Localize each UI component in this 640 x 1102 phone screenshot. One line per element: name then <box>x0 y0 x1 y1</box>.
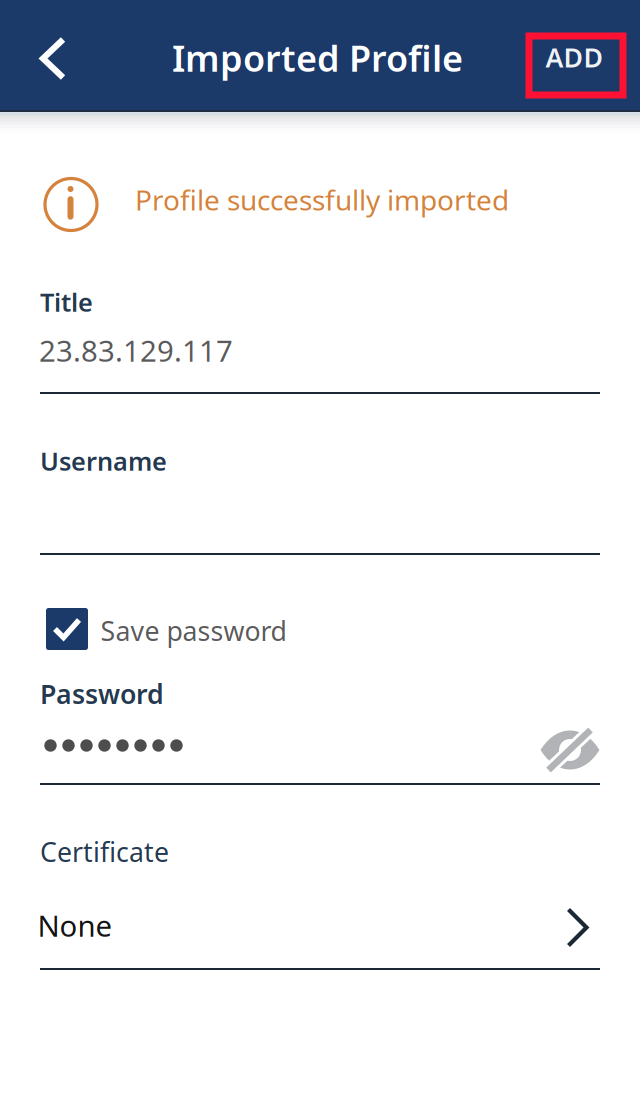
button[interactable]: Back <box>0 0 104 110</box>
button[interactable]: ADD <box>526 33 626 98</box>
staticText: Certificate <box>40 834 169 869</box>
staticText: Password <box>40 676 164 711</box>
staticText: Imported Profile <box>172 34 463 82</box>
staticText: None <box>37 906 112 945</box>
staticText: Profile successfully imported <box>135 181 509 218</box>
staticText: Save password <box>100 613 286 648</box>
button[interactable]: Password <box>40 725 520 785</box>
button[interactable]: 23.83.129.117 <box>40 332 600 394</box>
button[interactable]: Save password <box>44 606 290 652</box>
button[interactable]: Show password <box>538 727 604 773</box>
staticText: Title <box>40 285 93 319</box>
staticText: Username <box>40 444 167 478</box>
button[interactable]: None <box>40 898 600 960</box>
staticText: ADD <box>545 39 603 75</box>
staticText: 23.83.129.117 <box>39 331 233 370</box>
button[interactable]: Username <box>40 493 600 555</box>
